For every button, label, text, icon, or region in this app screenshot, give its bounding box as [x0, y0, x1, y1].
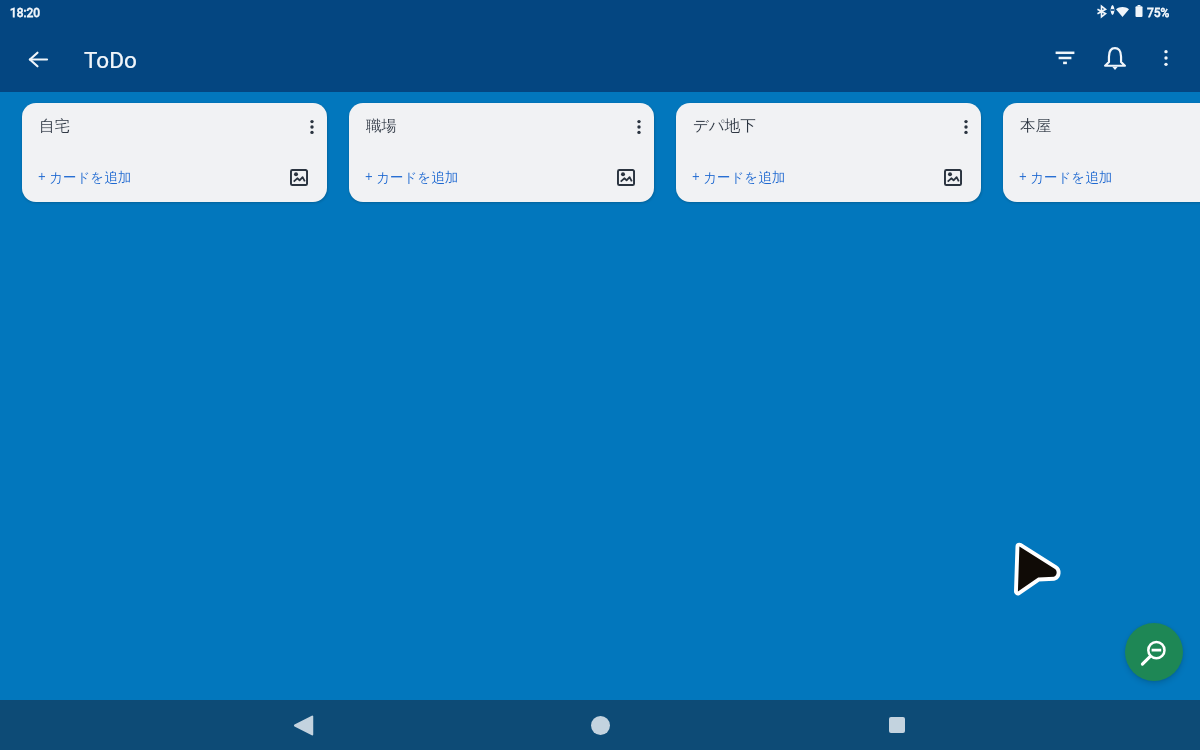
staticText: 18:20 [10, 6, 40, 20]
button[interactable]: Zoom out [1125, 623, 1183, 681]
button[interactable]: Recents [864, 700, 929, 750]
button[interactable]: 自宅 [22, 103, 327, 202]
button[interactable]: Add image card [611, 162, 641, 192]
button[interactable]: Filter [1041, 34, 1089, 82]
button[interactable]: List menu [296, 111, 327, 143]
button[interactable]: 職場 [349, 103, 654, 202]
staticText: ToDo [84, 47, 137, 73]
button[interactable]: List menu [950, 111, 981, 143]
staticText: 職場 [366, 116, 397, 136]
button[interactable]: デパ地下 [676, 103, 981, 202]
staticText: + カードを追加 [1019, 168, 1113, 186]
button[interactable]: Add image card [284, 162, 314, 192]
staticText: デパ地下 [693, 116, 756, 136]
button[interactable]: + カードを追加 [692, 168, 786, 186]
button[interactable]: Notifications [1091, 34, 1139, 82]
staticText: 75% [1147, 6, 1170, 20]
button[interactable]: More options [1142, 34, 1190, 82]
staticText: 本屋 [1020, 116, 1051, 136]
button[interactable]: + カードを追加 [38, 168, 132, 186]
button[interactable]: Home [568, 700, 633, 750]
button[interactable]: Back [14, 35, 62, 83]
button[interactable]: 本屋 [1003, 103, 1200, 202]
button[interactable]: + カードを追加 [365, 168, 459, 186]
staticText: 自宅 [39, 116, 70, 136]
staticText: + カードを追加 [365, 168, 459, 186]
button[interactable]: + カードを追加 [1019, 168, 1113, 186]
staticText: + カードを追加 [692, 168, 786, 186]
staticText: + カードを追加 [38, 168, 132, 186]
button[interactable]: List menu [623, 111, 654, 143]
button[interactable]: Add image card [938, 162, 968, 192]
button[interactable]: Back [271, 700, 336, 750]
